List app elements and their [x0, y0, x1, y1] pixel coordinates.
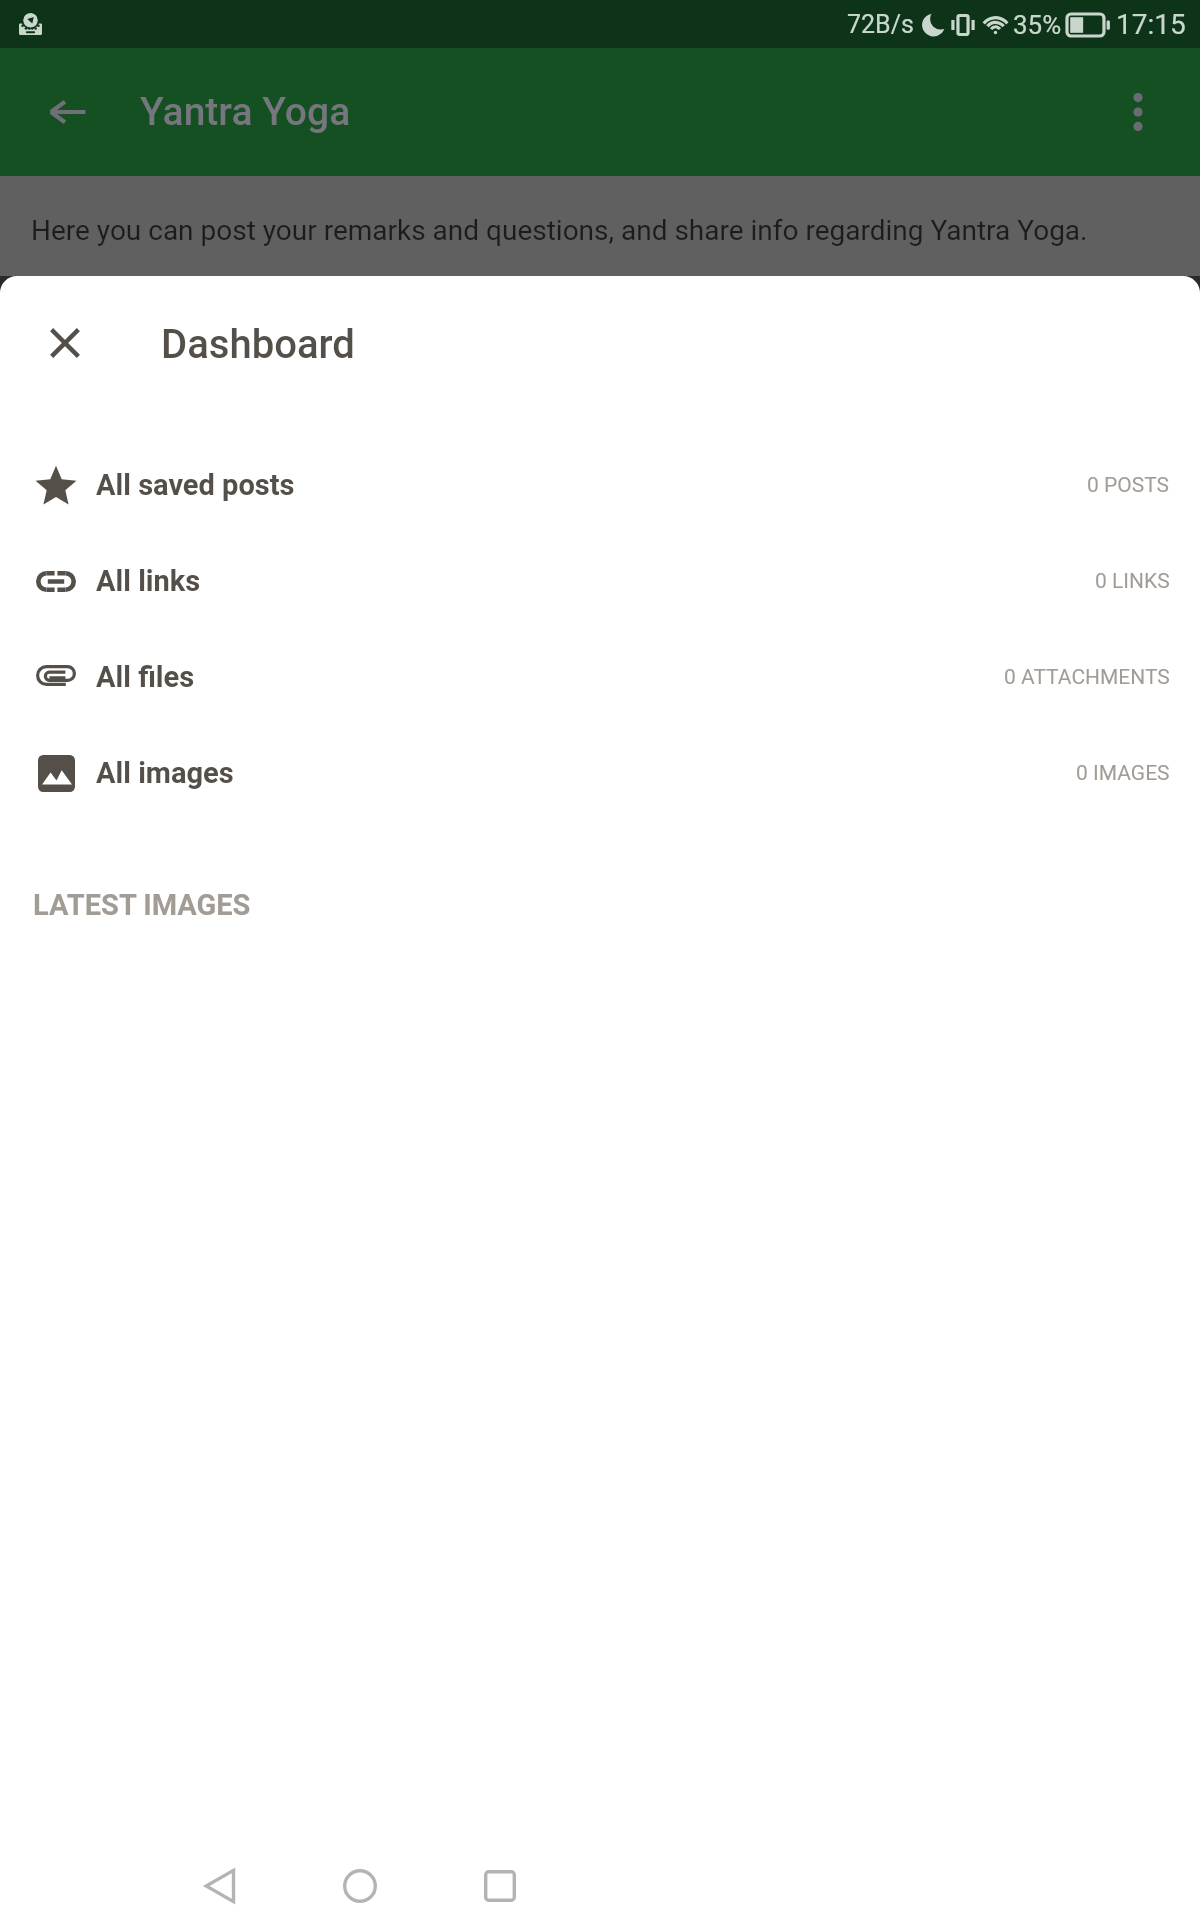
staticText: All links — [96, 564, 201, 598]
button[interactable]: More options — [1098, 72, 1178, 152]
button[interactable]: All files — [0, 629, 1200, 725]
staticText: 17:15 — [1116, 8, 1186, 41]
staticText: 35% — [1013, 10, 1062, 40]
staticText: All saved posts — [96, 468, 295, 502]
staticText: LATEST IMAGES — [33, 888, 251, 922]
staticText: 72B/s — [847, 10, 914, 39]
staticText: Yantra Yoga — [140, 89, 351, 135]
button[interactable]: All images — [0, 725, 1200, 821]
button[interactable]: Recent apps — [430, 1838, 570, 1920]
button[interactable]: Home — [290, 1838, 430, 1920]
button[interactable]: Back — [150, 1838, 290, 1920]
staticText: All images — [96, 756, 234, 790]
staticText: 0 ATTACHMENTS — [1004, 665, 1170, 690]
staticText: All files — [96, 660, 195, 694]
button[interactable]: Navigate up — [28, 72, 108, 152]
staticText: 0 IMAGES — [1076, 761, 1170, 786]
staticText: 0 POSTS — [1087, 473, 1170, 498]
button[interactable]: All saved posts — [0, 437, 1200, 533]
button[interactable]: Close — [25, 303, 105, 383]
button[interactable]: All links — [0, 533, 1200, 629]
staticText: Here you can post your remarks and quest… — [31, 214, 1088, 247]
staticText: Dashboard — [161, 321, 355, 368]
staticText: 0 LINKS — [1095, 569, 1170, 594]
